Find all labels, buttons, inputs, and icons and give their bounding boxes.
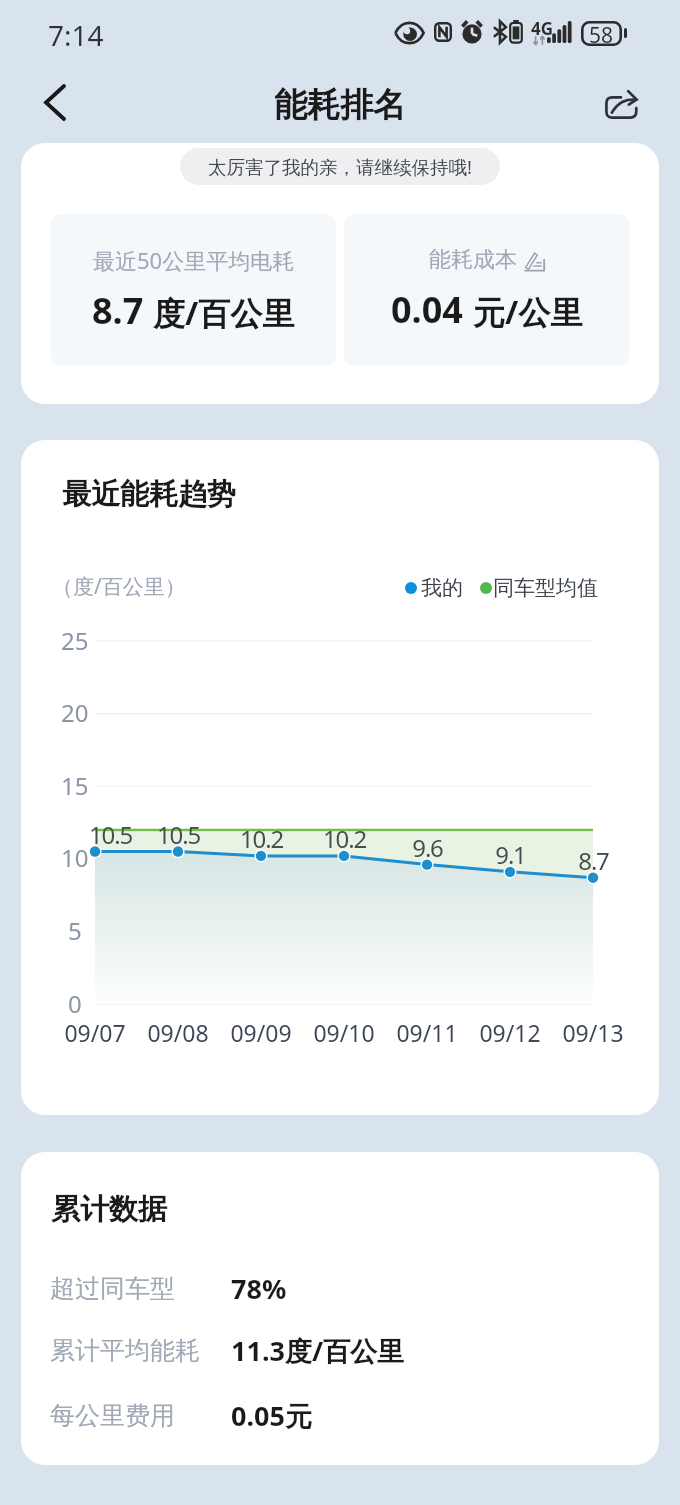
staticText: 0 (68, 987, 82, 1020)
staticText: 09/10 (313, 1017, 375, 1048)
staticText: 58 (589, 21, 614, 46)
button[interactable]: 能耗成本 (344, 214, 629, 366)
staticText: 太厉害了我的亲，请继续保持哦! (208, 154, 472, 179)
staticText: 20 (61, 696, 89, 729)
staticText: 15 (61, 769, 89, 802)
staticText: 09/07 (64, 1017, 126, 1048)
staticText: （度/百公里） (52, 572, 186, 601)
staticText: 同车型均值 (493, 575, 598, 601)
staticText: 09/08 (147, 1017, 209, 1048)
staticText: 5 (68, 914, 82, 947)
staticText: 能耗成本 (429, 246, 517, 274)
button[interactable]: Back (24, 69, 86, 135)
staticText: 09/09 (230, 1017, 292, 1048)
staticText: 09/11 (396, 1017, 458, 1048)
staticText: 09/12 (479, 1017, 541, 1048)
staticText: 10 (61, 841, 89, 874)
staticText: 累计数据 (51, 1191, 167, 1228)
staticText: 8.7 (92, 286, 153, 335)
staticText: 9.6 (412, 831, 443, 864)
staticText: 超过同车型 (50, 1273, 175, 1304)
staticText: 09/13 (562, 1017, 624, 1048)
staticText: 7:14 (48, 16, 104, 54)
staticText: 最近能耗趋势 (62, 476, 236, 513)
staticText: 能耗排名 (274, 84, 406, 126)
staticText: 10.2 (323, 822, 366, 855)
staticText: 0.05元 (231, 1397, 312, 1434)
staticText: 25 (61, 624, 89, 657)
staticText: 10.5 (89, 818, 132, 851)
staticText: 10.2 (240, 822, 283, 855)
staticText: 10.5 (157, 818, 200, 851)
staticText: 我的 (421, 575, 463, 601)
staticText: 0.04 (391, 285, 473, 334)
staticText: 每公里费用 (50, 1400, 175, 1431)
staticText: 最近50公里平均电耗 (93, 245, 295, 275)
staticText: 元/公里 (473, 290, 583, 334)
staticText: 78% (231, 1270, 287, 1307)
staticText: 9.1 (495, 838, 526, 871)
staticText: 4G (531, 17, 554, 40)
button[interactable]: Share (596, 69, 648, 135)
staticText: 11.3度/百公里 (231, 1332, 405, 1369)
staticText: 8.7 (578, 844, 609, 877)
button[interactable]: 最近50公里平均电耗 (51, 214, 336, 366)
staticText: 度/百公里 (153, 291, 295, 335)
staticText: 累计平均能耗 (50, 1335, 200, 1366)
